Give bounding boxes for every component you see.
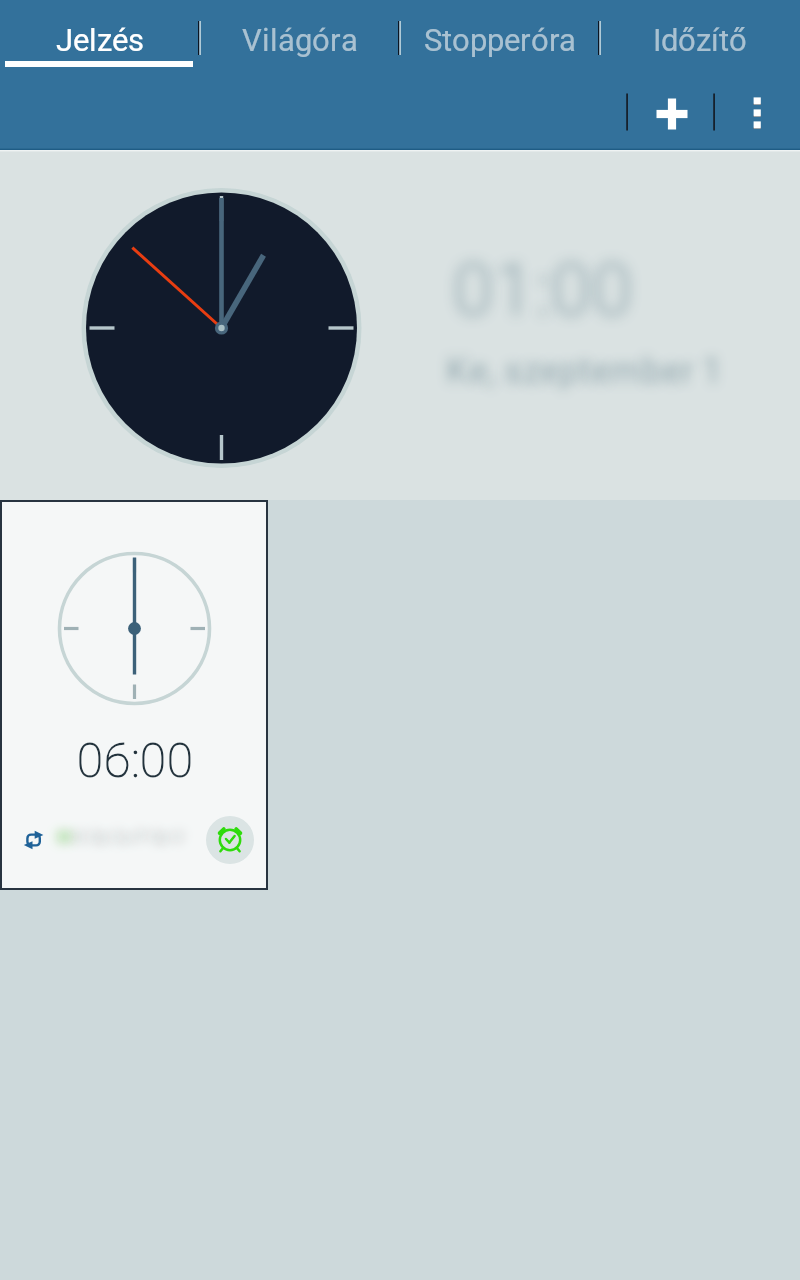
button[interactable]: Riasztás be/ki — [206, 816, 254, 864]
button[interactable]: Jelzés — [0, 0, 200, 75]
button[interactable]: Alarm hozzáadása — [630, 79, 714, 150]
button[interactable]: Világóra — [200, 0, 400, 75]
button[interactable]: További lehetőségek — [717, 79, 795, 150]
button[interactable]: Stopperóra — [400, 0, 600, 75]
button[interactable]: Riasztás 06:00 — [2, 502, 266, 888]
button[interactable]: Ismétlés — [26, 832, 44, 848]
button[interactable]: Időzítő — [600, 0, 800, 75]
